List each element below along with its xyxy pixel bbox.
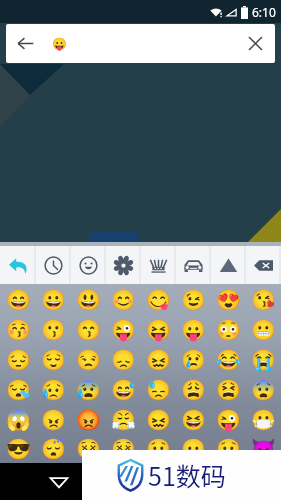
button[interactable]: 😚 xyxy=(0,314,36,344)
staticText: 😘 xyxy=(251,288,276,311)
staticText: 😄 xyxy=(6,288,31,311)
staticText: 😚 xyxy=(6,318,31,341)
staticText: 😊 xyxy=(111,288,136,311)
staticText: 😜 xyxy=(111,318,136,341)
button[interactable]: 😟 xyxy=(141,434,176,463)
staticText: 😔 xyxy=(6,348,31,371)
staticText: 😍 xyxy=(216,288,241,311)
staticText: 😝 xyxy=(146,318,171,341)
button[interactable]: 😛 xyxy=(176,314,211,344)
staticText: 😵 xyxy=(76,437,101,460)
button[interactable]: 😙 xyxy=(71,314,106,344)
staticText: 😨 xyxy=(251,378,276,401)
button[interactable]: 😧 xyxy=(211,434,246,463)
button[interactable]: 😩 xyxy=(176,374,211,404)
staticText: 6:10 xyxy=(252,4,276,20)
button[interactable]: 😵 xyxy=(106,434,141,463)
button[interactable]: 😬 xyxy=(246,314,281,344)
staticText: 😡 xyxy=(76,408,101,431)
staticText: 😃 xyxy=(76,288,101,311)
button[interactable]: 😆 xyxy=(176,404,211,434)
button[interactable]: 😦 xyxy=(176,434,211,463)
button[interactable]: 😈 xyxy=(246,434,281,463)
button[interactable]: 😝 xyxy=(141,314,176,344)
button[interactable]: Nature xyxy=(106,246,141,284)
button[interactable]: 😢 xyxy=(176,344,211,374)
button[interactable]: 😠 xyxy=(36,404,71,434)
button[interactable]: 😒 xyxy=(71,344,106,374)
staticText: 😭 xyxy=(251,348,276,371)
staticText: 😖 xyxy=(146,348,171,371)
button[interactable]: 😵 xyxy=(71,434,106,463)
staticText: 😞 xyxy=(111,348,136,371)
button[interactable]: 😓 xyxy=(141,374,176,404)
button[interactable]: 😄 xyxy=(0,284,36,314)
button[interactable]: 😷 xyxy=(246,404,281,434)
staticText: 😆 xyxy=(181,408,206,431)
button[interactable]: Recently used xyxy=(0,246,36,284)
button[interactable]: Objects xyxy=(141,246,176,284)
button[interactable]: 😃 xyxy=(71,284,106,314)
staticText: 😫 xyxy=(216,378,241,401)
button[interactable]: 😍 xyxy=(211,284,246,314)
button[interactable]: 😎 xyxy=(0,434,36,463)
staticText: 😈 xyxy=(251,437,276,460)
staticText: 😬 xyxy=(251,318,276,341)
button[interactable]: Backspace xyxy=(246,246,281,284)
button[interactable]: Symbols xyxy=(211,246,246,284)
staticText: 😵 xyxy=(111,437,136,460)
button[interactable]: 😴 xyxy=(36,434,71,463)
staticText: 😎 xyxy=(6,437,31,460)
staticText: 51数码 xyxy=(148,457,226,493)
button[interactable]: Clear xyxy=(236,24,275,63)
button[interactable]: 😱 xyxy=(0,404,36,434)
button[interactable]: 😗 xyxy=(36,314,71,344)
button[interactable]: 😰 xyxy=(71,374,106,404)
button[interactable]: 😊 xyxy=(106,284,141,314)
staticText: 😒 xyxy=(76,348,101,371)
button[interactable]: 😪 xyxy=(0,374,36,404)
button[interactable]: 😥 xyxy=(36,374,71,404)
button[interactable]: 😘 xyxy=(246,284,281,314)
staticText: 😱 xyxy=(6,408,31,431)
button[interactable]: Smileys xyxy=(71,246,106,284)
button[interactable]: 😂 xyxy=(211,344,246,374)
staticText: 😦 xyxy=(181,437,206,460)
staticText: 😢 xyxy=(181,348,206,371)
button[interactable]: 😉 xyxy=(176,284,211,314)
button[interactable]: 😖 xyxy=(141,344,176,374)
button[interactable]: 😌 xyxy=(36,344,71,374)
button[interactable]: Clock xyxy=(36,246,71,284)
staticText: 😓 xyxy=(146,378,171,401)
button[interactable]: 😤 xyxy=(106,404,141,434)
staticText: 😩 xyxy=(181,378,206,401)
button[interactable]: 😞 xyxy=(106,344,141,374)
button[interactable]: 😫 xyxy=(211,374,246,404)
button[interactable]: Back xyxy=(6,24,45,63)
button[interactable]: 😜 xyxy=(211,404,246,434)
button[interactable]: 😜 xyxy=(106,314,141,344)
staticText: 😙 xyxy=(76,318,101,341)
button[interactable]: 😀 xyxy=(36,284,71,314)
staticText: 😰 xyxy=(76,378,101,401)
button[interactable]: 😖 xyxy=(141,404,176,434)
button[interactable]: Hide keyboard xyxy=(40,463,77,500)
button[interactable]: 😋 xyxy=(141,284,176,314)
staticText: 😴 xyxy=(41,437,66,460)
staticText: 😛 xyxy=(52,37,67,51)
staticText: 😜 xyxy=(216,408,241,431)
staticText: 😪 xyxy=(6,378,31,401)
button[interactable]: Travel xyxy=(176,246,211,284)
staticText: 😂 xyxy=(216,348,241,371)
button[interactable]: 😅 xyxy=(106,374,141,404)
staticText: 😤 xyxy=(111,408,136,431)
button[interactable]: 😡 xyxy=(71,404,106,434)
button[interactable]: 😳 xyxy=(211,314,246,344)
button[interactable]: 😔 xyxy=(0,344,36,374)
staticText: 😀 xyxy=(41,288,66,311)
staticText: 😛 xyxy=(181,318,206,341)
button[interactable]: 😨 xyxy=(246,374,281,404)
button[interactable]: 😭 xyxy=(246,344,281,374)
staticText: 😋 xyxy=(146,288,171,311)
staticText: 😳 xyxy=(216,318,241,341)
